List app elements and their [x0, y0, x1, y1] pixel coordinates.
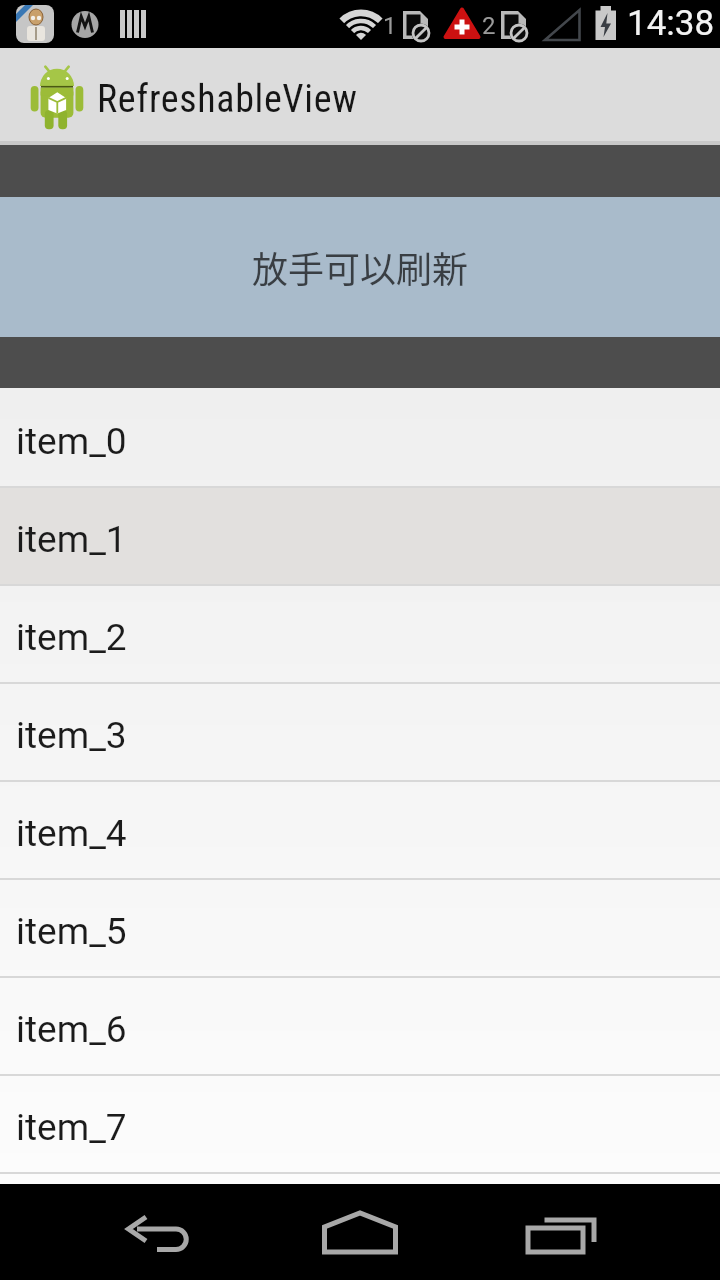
staticText: 放手可以刷新 [252, 241, 469, 293]
button[interactable]: item_5 [0, 880, 720, 978]
staticText: 14:38 [627, 3, 715, 44]
staticText: item_1 [16, 518, 127, 561]
staticText: item_6 [16, 1008, 127, 1051]
staticText: 1 [383, 12, 397, 40]
staticText: RefreshableView [97, 77, 358, 122]
button[interactable]: item_4 [0, 782, 720, 880]
staticText: item_3 [16, 714, 127, 757]
button[interactable]: item_3 [0, 684, 720, 782]
staticText: item_4 [16, 812, 127, 855]
staticText: item_5 [16, 910, 127, 953]
staticText: item_2 [16, 616, 127, 659]
button[interactable]: item_1 [0, 488, 720, 586]
button[interactable]: item_7 [0, 1076, 720, 1174]
button[interactable] [240, 1184, 480, 1280]
staticText: item_0 [16, 420, 127, 463]
staticText: 2 [482, 12, 496, 40]
button[interactable]: item_6 [0, 978, 720, 1076]
button[interactable] [480, 1184, 720, 1280]
button[interactable]: item_2 [0, 586, 720, 684]
button[interactable] [0, 1184, 240, 1280]
staticText: item_7 [16, 1106, 127, 1149]
button[interactable]: item_0 [0, 390, 720, 488]
